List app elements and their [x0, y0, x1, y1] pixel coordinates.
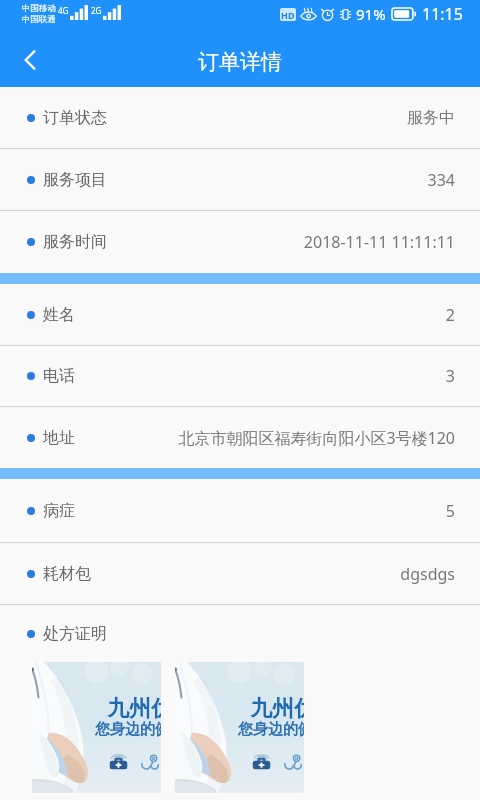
staticText: 耗材包: [43, 564, 91, 584]
button[interactable]: 耗材包: [0, 543, 480, 604]
staticText: 病症: [43, 501, 75, 521]
staticText: 2018-11-11 11:11:11: [303, 231, 455, 253]
staticText: 3: [445, 365, 455, 387]
staticText: 中国移动: [22, 3, 56, 14]
staticText: 九州优健康: [107, 695, 161, 723]
button[interactable]: 返回: [0, 27, 54, 87]
staticText: 订单状态: [43, 108, 107, 128]
staticText: 中国联通: [22, 14, 56, 25]
staticText: 北京市朝阳区福寿街向阳小区3号楼120: [178, 427, 455, 449]
staticText: 处方证明: [43, 624, 107, 644]
staticText: 您身边的健康管家: [95, 720, 161, 739]
staticText: 服务项目: [43, 170, 107, 190]
button[interactable]: 姓名: [0, 284, 480, 345]
staticText: 您身边的健康管家: [238, 720, 304, 739]
staticText: 订单详情: [198, 49, 282, 75]
button[interactable]: 服务时间: [0, 211, 480, 273]
staticText: 九州优健康: [250, 695, 304, 723]
button[interactable]: 地址: [0, 407, 480, 468]
staticText: 5: [445, 500, 455, 522]
staticText: 服务时间: [43, 232, 107, 252]
button[interactable]: 电话: [0, 346, 480, 406]
staticText: 4G: [58, 5, 69, 16]
button[interactable]: 处方证明: [0, 605, 480, 662]
button[interactable]: 病症: [0, 479, 480, 542]
button[interactable]: 处方证明图片: [175, 662, 304, 793]
staticText: 2: [445, 304, 455, 326]
staticText: 电话: [43, 366, 75, 386]
staticText: 2G: [91, 5, 102, 16]
staticText: 服务中: [407, 108, 455, 128]
button[interactable]: 服务项目: [0, 149, 480, 210]
staticText: dgsdgs: [400, 563, 455, 585]
button[interactable]: 处方证明图片: [32, 662, 161, 793]
staticText: 11:15: [422, 3, 463, 25]
staticText: 地址: [43, 428, 75, 448]
staticText: 姓名: [43, 305, 75, 325]
staticText: 334: [427, 169, 455, 191]
staticText: 91%: [356, 4, 386, 24]
button[interactable]: 订单状态: [0, 87, 480, 148]
staticText: HD: [281, 9, 295, 21]
